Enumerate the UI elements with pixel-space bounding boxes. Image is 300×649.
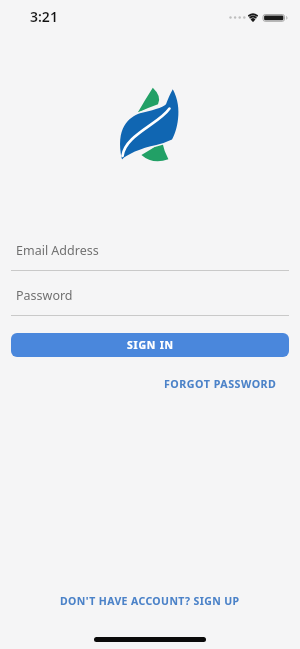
- button[interactable]: Email Address: [11, 238, 289, 271]
- staticText: 3:21: [30, 7, 58, 26]
- staticText: Email Address: [16, 242, 99, 259]
- staticText: SIGN IN: [127, 338, 174, 352]
- button[interactable]: Password: [11, 283, 289, 316]
- button[interactable]: SIGN IN: [11, 333, 289, 357]
- staticText: Password: [16, 287, 73, 304]
- button[interactable]: DON'T HAVE ACCOUNT? SIGN UP: [60, 594, 240, 608]
- button[interactable]: FORGOT PASSWORD: [164, 377, 277, 392]
